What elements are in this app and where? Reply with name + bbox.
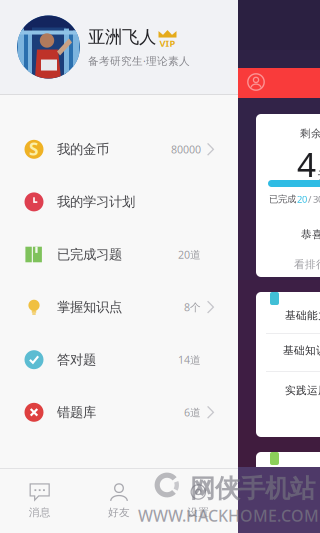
staticText: 设置 xyxy=(187,506,209,519)
staticText: 80000 xyxy=(171,142,201,156)
staticText: 答对题 xyxy=(57,351,96,368)
staticText: 网侠手机站 xyxy=(190,473,315,504)
button[interactable]: 设置 xyxy=(159,469,238,533)
button[interactable]: 掌握知识点 xyxy=(0,281,238,333)
staticText: 好友 xyxy=(108,506,130,519)
button[interactable]: 消息 xyxy=(0,469,79,533)
staticText: WWW.HACKHOME.COM xyxy=(138,505,319,526)
staticText: 天 xyxy=(317,168,320,183)
staticText: / 30 xyxy=(308,193,320,205)
button[interactable]: 好友 xyxy=(79,469,159,533)
staticText: 实践运用 xyxy=(285,384,320,397)
staticText: 基础能力 xyxy=(285,309,320,322)
staticText: 20道 xyxy=(178,247,201,262)
staticText: 已完成 xyxy=(269,193,296,205)
button[interactable]: 错题库 xyxy=(0,386,238,439)
staticText: 亚洲飞人 xyxy=(88,26,156,48)
staticText: 我的金币 xyxy=(57,141,109,157)
staticText: 4 xyxy=(297,142,316,186)
staticText: 备考研究生·理论素人 xyxy=(88,54,190,68)
staticText: 基础知识 xyxy=(283,344,320,357)
button[interactable]: 答对题 xyxy=(0,333,238,386)
staticText: 我的学习计划 xyxy=(57,194,135,210)
staticText: 14道 xyxy=(178,353,201,367)
staticText: 8个 xyxy=(184,300,201,314)
staticText: 恭喜您 xyxy=(301,228,320,241)
button[interactable]: 我的学习计划 xyxy=(0,176,238,228)
staticText: S xyxy=(29,137,39,160)
staticText: 已完成习题 xyxy=(57,246,122,263)
staticText: 看排行榜 xyxy=(294,258,320,271)
staticText: VIP xyxy=(159,37,175,49)
staticText: 6道 xyxy=(184,405,201,419)
staticText: 掌握知识点 xyxy=(57,299,122,315)
staticText: 消息 xyxy=(29,506,51,519)
button[interactable]: 已完成习题 xyxy=(0,228,238,281)
button[interactable]: S xyxy=(0,123,238,176)
staticText: 20 xyxy=(297,193,307,205)
staticText: 错题库 xyxy=(57,404,96,420)
staticText: 剩余 xyxy=(300,127,320,140)
button[interactable]: 亚洲飞人 xyxy=(0,0,238,94)
